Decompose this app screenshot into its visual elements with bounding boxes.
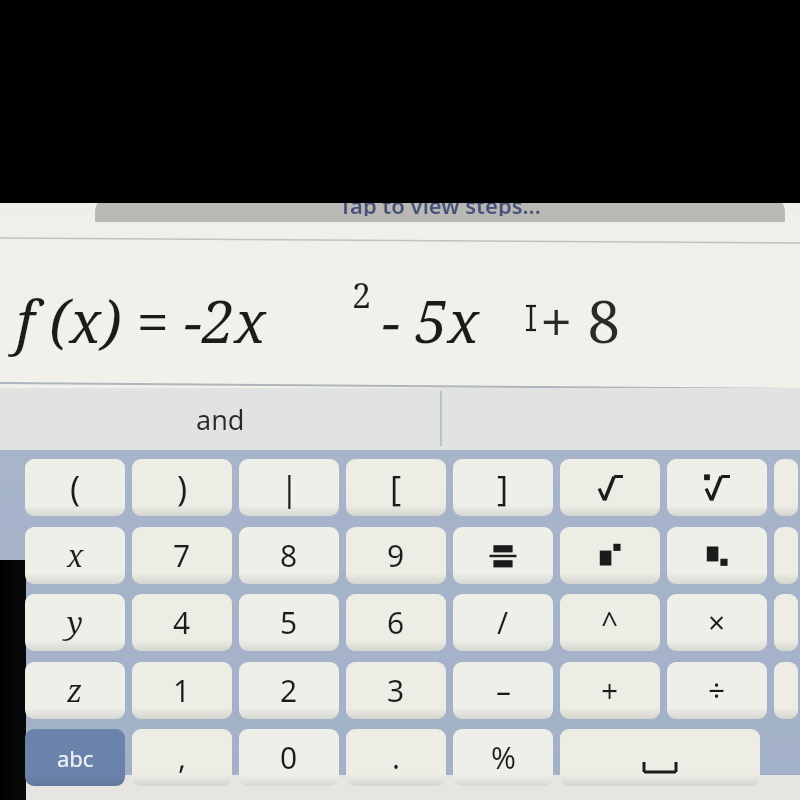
button[interactable]: ( — [25, 459, 125, 516]
button[interactable]: 3 — [346, 662, 446, 719]
button[interactable]: and — [0, 388, 441, 450]
button[interactable]: 7 — [132, 527, 232, 584]
staticText: | — [280, 465, 299, 511]
staticText: 8 — [280, 535, 298, 576]
staticText: , — [178, 737, 187, 778]
staticText: 6 — [387, 602, 405, 643]
button[interactable]: % — [453, 729, 553, 786]
button[interactable]: Space — [560, 729, 760, 786]
button[interactable]: 8 — [239, 527, 339, 584]
button[interactable]: 5 — [239, 594, 339, 651]
button[interactable]: Key — [774, 459, 798, 516]
button[interactable]: 0 — [239, 729, 339, 786]
staticText: y — [67, 602, 83, 643]
staticText: 0 — [280, 737, 298, 778]
staticText: / — [497, 602, 509, 643]
button[interactable]: Superscript — [560, 527, 660, 584]
staticText: ^ — [601, 602, 619, 643]
staticText: ) — [177, 465, 188, 511]
button[interactable]: 2 — [239, 662, 339, 719]
button[interactable]: 4 — [132, 594, 232, 651]
button[interactable]: ^ — [560, 594, 660, 651]
button[interactable]: Fraction — [453, 527, 553, 584]
button[interactable]: – — [453, 662, 553, 719]
staticText: ÷ — [708, 670, 726, 711]
staticText: 7 — [173, 535, 191, 576]
button[interactable]: abc — [25, 729, 125, 786]
staticText: [ — [390, 465, 402, 511]
button[interactable]: + — [560, 662, 660, 719]
button[interactable]: x — [25, 527, 125, 584]
staticText: ] — [497, 465, 509, 511]
staticText: 5 — [280, 602, 298, 643]
button[interactable]: z — [25, 662, 125, 719]
staticText: Tap to view steps... — [339, 196, 541, 216]
button[interactable]: Key — [774, 594, 798, 651]
staticText: 2 — [280, 670, 298, 711]
staticText: − 5x — [382, 281, 480, 360]
button[interactable]: Key — [774, 662, 798, 719]
staticText: % — [491, 737, 516, 778]
staticText: x — [67, 535, 84, 576]
button[interactable]: Tap to view steps... — [95, 196, 785, 222]
button[interactable]: 6 — [346, 594, 446, 651]
staticText: × — [708, 602, 726, 643]
button[interactable]: | — [239, 459, 339, 516]
button[interactable]: Nth root — [667, 459, 767, 516]
staticText: 1 — [173, 670, 191, 711]
button[interactable]: y — [25, 594, 125, 651]
button[interactable]: Square root — [560, 459, 660, 516]
button[interactable]: 1 — [132, 662, 232, 719]
button[interactable]: Subscript — [667, 527, 767, 584]
staticText: + 8 — [540, 281, 620, 360]
staticText: – — [496, 670, 511, 711]
staticText: + — [601, 670, 619, 711]
button[interactable]: / — [453, 594, 553, 651]
staticText: 3 — [387, 670, 405, 711]
button[interactable]: ÷ — [667, 662, 767, 719]
staticText: abc — [57, 743, 94, 773]
button[interactable]: [ — [346, 459, 446, 516]
button[interactable]: 9 — [346, 527, 446, 584]
button[interactable]: , — [132, 729, 232, 786]
staticText: f (x) = −2x — [16, 281, 266, 360]
staticText: 9 — [387, 535, 405, 576]
staticText: and — [196, 401, 245, 438]
button[interactable]: Key — [774, 527, 798, 584]
button[interactable]: . — [346, 729, 446, 786]
button[interactable]: ] — [453, 459, 553, 516]
staticText: 2 — [352, 272, 372, 318]
button[interactable]: ) — [132, 459, 232, 516]
button[interactable]: × — [667, 594, 767, 651]
staticText: 4 — [173, 602, 191, 643]
staticText: z — [67, 670, 83, 711]
staticText: . — [392, 737, 401, 778]
staticText: ( — [70, 465, 81, 511]
